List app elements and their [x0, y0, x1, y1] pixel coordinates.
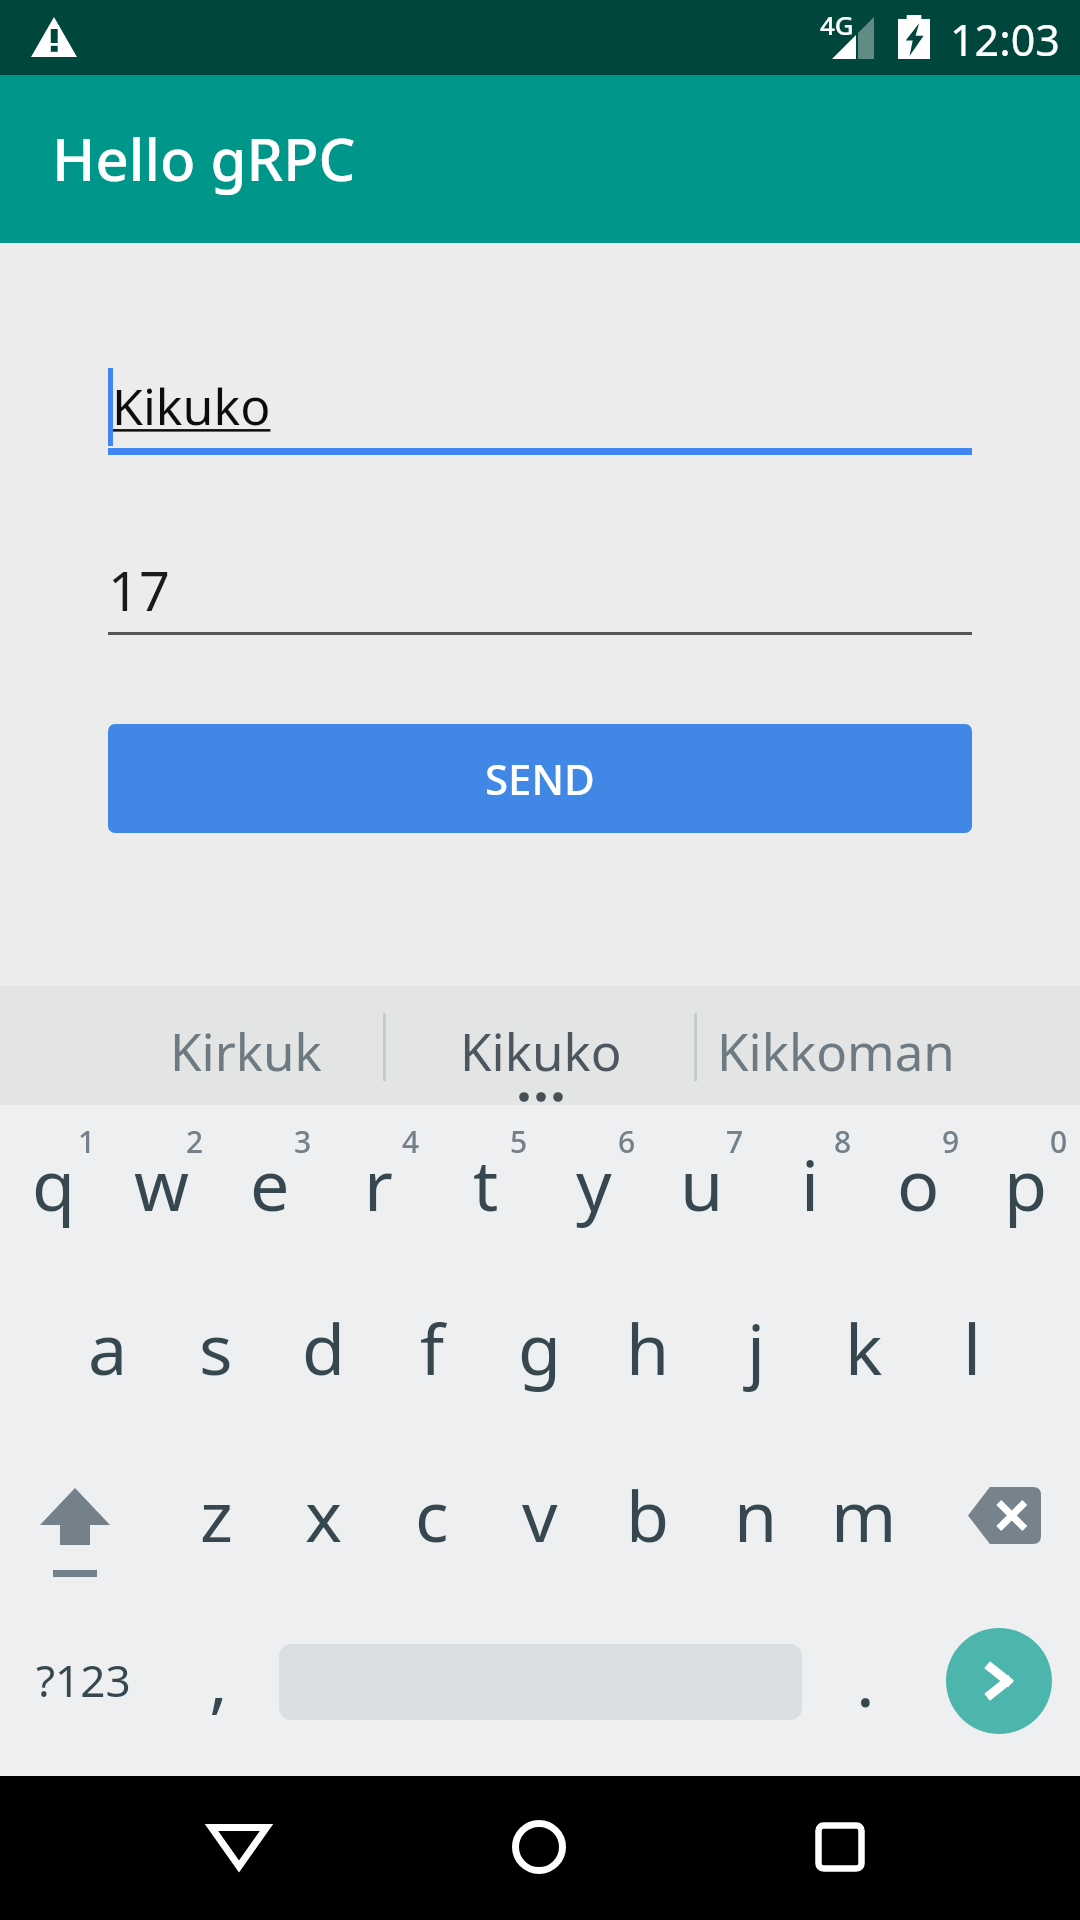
button[interactable]: g — [486, 1273, 594, 1441]
staticText: k — [845, 1300, 883, 1395]
button[interactable]: Shift — [0, 1441, 162, 1609]
staticText: m — [831, 1467, 897, 1562]
staticText: 2 — [186, 1121, 204, 1162]
staticText: 6 — [618, 1121, 636, 1162]
button[interactable]: c — [378, 1441, 486, 1609]
button[interactable]: m — [810, 1441, 918, 1609]
button[interactable]: Kikuko — [394, 986, 688, 1105]
staticText: 5 — [510, 1121, 528, 1162]
button[interactable]: Send — [946, 1628, 1052, 1734]
staticText: Kikuko — [112, 372, 271, 440]
staticText: 4G — [820, 7, 854, 42]
staticText: 4 — [402, 1121, 420, 1162]
staticText: 9 — [942, 1121, 960, 1162]
staticText: y — [576, 1136, 612, 1231]
button[interactable]: 17 — [108, 553, 972, 633]
staticText: b — [626, 1467, 670, 1562]
button[interactable]: 1 — [0, 1105, 108, 1273]
button[interactable]: 4 — [324, 1105, 432, 1273]
staticText: r — [364, 1136, 393, 1231]
staticText: j — [747, 1300, 766, 1395]
button[interactable]: 5 — [432, 1105, 540, 1273]
staticText: 12:03 — [950, 10, 1060, 69]
button[interactable]: Back — [184, 1792, 294, 1902]
staticText: Kirkuk — [170, 1016, 322, 1085]
staticText: . — [856, 1632, 875, 1727]
button[interactable]: f — [378, 1273, 486, 1441]
staticText: c — [415, 1467, 449, 1562]
button[interactable]: . — [810, 1609, 918, 1776]
button[interactable]: 9 — [864, 1105, 972, 1273]
staticText: o — [897, 1136, 940, 1231]
button[interactable]: Recents — [785, 1792, 895, 1902]
button[interactable]: n — [702, 1441, 810, 1609]
staticText: ?123 — [36, 1650, 131, 1710]
staticText: 7 — [726, 1121, 744, 1162]
staticText: e — [250, 1136, 290, 1231]
button[interactable]: d — [270, 1273, 378, 1441]
button[interactable]: ?123 — [0, 1609, 162, 1776]
button[interactable]: 7 — [648, 1105, 756, 1273]
staticText: p — [1004, 1136, 1048, 1231]
staticText: g — [518, 1300, 562, 1395]
button[interactable]: a — [54, 1273, 162, 1441]
button[interactable]: s — [162, 1273, 270, 1441]
staticText: x — [305, 1467, 343, 1562]
staticText: i — [801, 1136, 820, 1231]
staticText: d — [302, 1300, 346, 1395]
button[interactable]: k — [810, 1273, 918, 1441]
staticText: l — [963, 1300, 982, 1395]
button[interactable]: x — [270, 1441, 378, 1609]
staticText: z — [200, 1467, 233, 1562]
button[interactable]: z — [162, 1441, 270, 1609]
button[interactable]: Backspace — [918, 1441, 1080, 1609]
staticText: u — [680, 1136, 724, 1231]
staticText: SEND — [485, 750, 595, 807]
staticText: v — [522, 1467, 558, 1562]
staticText: 1 — [78, 1121, 96, 1162]
button[interactable]: Kirkuk — [98, 986, 394, 1105]
staticText: w — [134, 1136, 190, 1231]
button[interactable]: v — [486, 1441, 594, 1609]
button[interactable]: b — [594, 1441, 702, 1609]
button[interactable]: l — [918, 1273, 1026, 1441]
button[interactable]: , — [162, 1609, 280, 1776]
staticText: n — [734, 1467, 778, 1562]
staticText: f — [420, 1300, 445, 1395]
button[interactable]: 0 — [972, 1105, 1080, 1273]
staticText: Kikkoman — [717, 1016, 955, 1085]
staticText: , — [209, 1631, 228, 1726]
staticText: 0 — [1050, 1121, 1068, 1162]
staticText: q — [32, 1136, 76, 1231]
button[interactable]: h — [594, 1273, 702, 1441]
staticText: 8 — [834, 1121, 852, 1162]
staticText: t — [473, 1136, 499, 1231]
button[interactable]: 3 — [216, 1105, 324, 1273]
button[interactable]: SEND — [108, 724, 972, 833]
staticText: Hello gRPC — [52, 119, 356, 198]
button[interactable]: Kikuko — [108, 372, 972, 462]
button[interactable]: Home — [484, 1792, 594, 1902]
button[interactable]: 8 — [756, 1105, 864, 1273]
staticText: 17 — [108, 553, 170, 627]
staticText: h — [626, 1300, 670, 1395]
staticText: Kikuko — [460, 1016, 622, 1085]
button[interactable]: j — [702, 1273, 810, 1441]
button[interactable]: Kikkoman — [688, 986, 984, 1105]
staticText: a — [88, 1300, 128, 1395]
button[interactable]: 6 — [540, 1105, 648, 1273]
button[interactable]: 2 — [108, 1105, 216, 1273]
staticText: s — [199, 1300, 233, 1395]
staticText: 3 — [294, 1121, 312, 1162]
